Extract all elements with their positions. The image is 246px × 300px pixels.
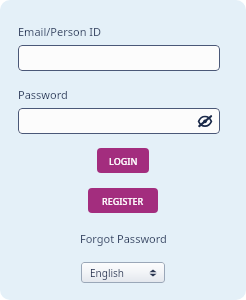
staticText: English (90, 266, 125, 280)
button[interactable]: REGISTER (88, 188, 158, 213)
button[interactable]: Show password (196, 112, 214, 130)
staticText: Email/Person ID (18, 24, 102, 39)
button[interactable]: Show password (18, 108, 220, 134)
staticText: REGISTER (102, 195, 144, 207)
button[interactable]: Forgot Password (76, 229, 171, 248)
staticText: Forgot Password (80, 231, 167, 246)
button[interactable]: English (81, 262, 165, 283)
staticText: Password (18, 87, 68, 102)
button[interactable] (18, 45, 220, 71)
button[interactable]: LOGIN (97, 148, 149, 173)
staticText: LOGIN (109, 155, 138, 167)
